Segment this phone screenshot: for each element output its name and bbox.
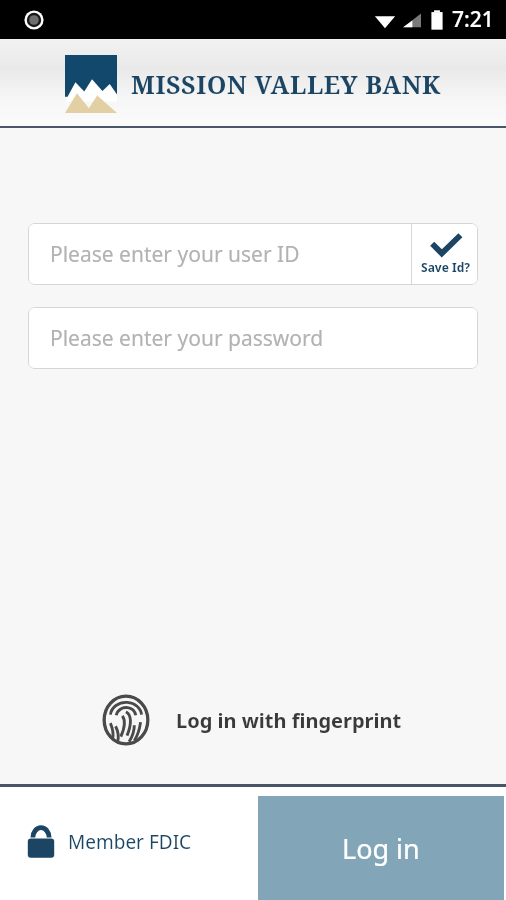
button[interactable]: Log in with fingerprint <box>96 690 406 750</box>
button[interactable]: Please enter your user ID <box>28 223 478 285</box>
staticText: 7:21 <box>452 5 494 34</box>
button[interactable]: Log in <box>258 796 504 900</box>
staticText: Member FDIC <box>68 829 192 855</box>
staticText: Save Id? <box>421 259 470 275</box>
staticText: Please enter your password <box>50 324 324 353</box>
staticText: Log in with fingerprint <box>176 707 402 734</box>
staticText: Please enter your user ID <box>50 240 300 269</box>
button[interactable]: Please enter your password <box>28 307 478 369</box>
button[interactable]: Save Id <box>412 223 478 285</box>
button[interactable]: Member FDIC <box>26 825 192 859</box>
staticText: MISSION VALLEY BANK <box>131 67 441 101</box>
staticText: Log in <box>342 830 420 867</box>
